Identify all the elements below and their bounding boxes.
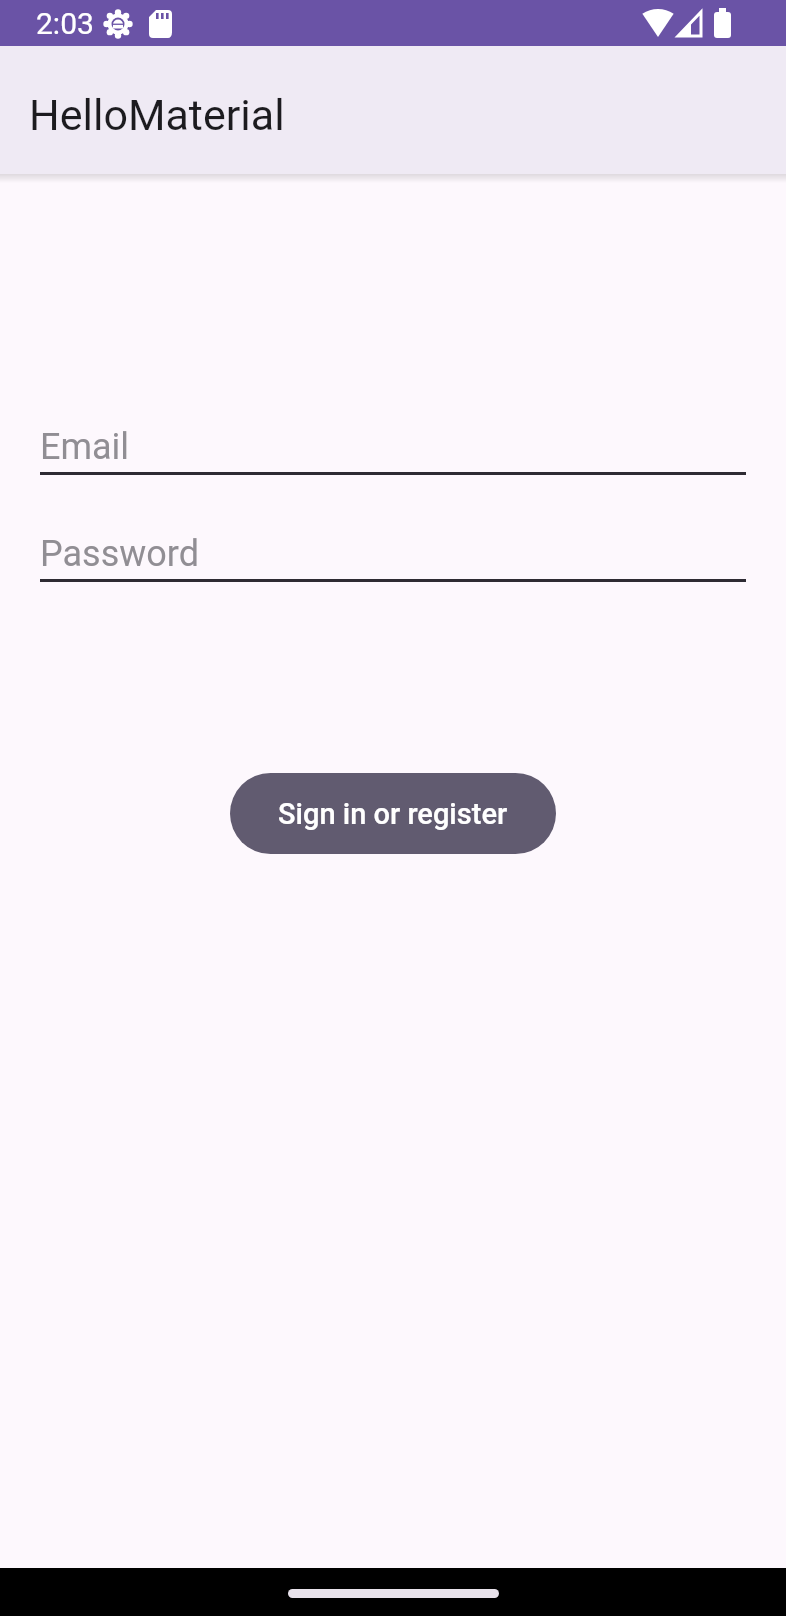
staticText: 2:03: [36, 6, 94, 41]
button[interactable]: Email: [40, 417, 746, 475]
button[interactable]: Password: [40, 524, 746, 582]
button[interactable]: Sign in or register: [230, 773, 556, 854]
staticText: Email: [40, 426, 130, 468]
staticText: HelloMaterial: [29, 90, 285, 140]
staticText: Password: [40, 533, 200, 575]
staticText: Sign in or register: [278, 797, 508, 831]
